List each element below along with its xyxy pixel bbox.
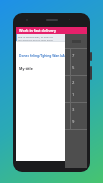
staticText: My title	[19, 66, 33, 71]
staticText: 3	[72, 107, 75, 113]
button[interactable]: Side panel	[65, 34, 87, 168]
button[interactable]: Work in fast delivery	[16, 27, 87, 34]
staticText: 2	[72, 80, 75, 86]
staticText: Work in fast delivery	[19, 28, 57, 33]
button[interactable]: 2	[65, 76, 87, 102]
button[interactable]	[65, 34, 87, 48]
button[interactable]: Sed ut perspiciatis, ut nihil hic	[16, 34, 87, 41]
staticText: qui dolorem ipsum quia amet	[18, 38, 53, 41]
button[interactable]: 3	[65, 103, 87, 129]
staticText: 7	[72, 53, 75, 59]
staticText: Sed ut perspiciatis, ut nihil hic	[18, 35, 53, 38]
staticText: 5	[72, 65, 75, 71]
button[interactable]: Donec feling/Tghing Wan kAs	[16, 52, 87, 58]
button[interactable]: 7	[65, 49, 87, 75]
button[interactable]: My title	[16, 65, 87, 72]
staticText: 9	[72, 119, 75, 125]
staticText: 1	[72, 92, 75, 98]
staticText: Donec feling/Tghing Wan kAs	[19, 53, 67, 57]
